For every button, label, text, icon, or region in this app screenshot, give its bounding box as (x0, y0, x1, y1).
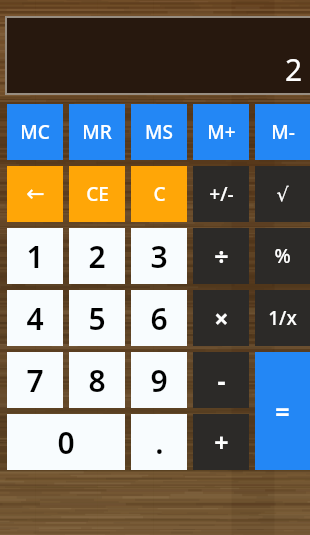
button[interactable]: +/- (193, 166, 249, 222)
staticText: 9 (150, 360, 168, 401)
staticText: 2 (285, 49, 303, 90)
staticText: MR (82, 119, 112, 145)
button[interactable]: 4 (7, 290, 63, 346)
staticText: 1 (26, 236, 44, 277)
button[interactable]: 6 (131, 290, 187, 346)
staticText: 6 (150, 298, 168, 339)
staticText: 4 (26, 298, 44, 339)
button[interactable]: % (255, 228, 310, 284)
staticText: 7 (26, 360, 44, 401)
button[interactable]: = (255, 352, 310, 470)
staticText: 0 (57, 422, 75, 463)
button[interactable]: 3 (131, 228, 187, 284)
staticText: 1/x (268, 305, 297, 331)
button[interactable]: 0 (7, 414, 125, 470)
button[interactable]: + (193, 414, 249, 470)
staticText: ← (26, 181, 45, 207)
button[interactable]: 1/x (255, 290, 310, 346)
button[interactable]: MC (7, 104, 63, 160)
staticText: MC (20, 119, 50, 145)
button[interactable]: MR (69, 104, 125, 160)
staticText: . (155, 422, 164, 463)
staticText: +/- (209, 181, 234, 207)
staticText: M+ (207, 119, 236, 145)
staticText: MS (145, 119, 173, 145)
staticText: = (275, 394, 290, 428)
button[interactable]: ÷ (193, 228, 249, 284)
staticText: 5 (88, 298, 106, 339)
staticText: √ (276, 183, 289, 205)
button[interactable]: 2 (69, 228, 125, 284)
staticText: C (153, 181, 166, 207)
staticText: 8 (88, 360, 106, 401)
staticText: CE (86, 181, 109, 207)
button[interactable]: MS (131, 104, 187, 160)
button[interactable]: 5 (69, 290, 125, 346)
button[interactable]: 1 (7, 228, 63, 284)
staticText: % (274, 243, 291, 269)
staticText: ÷ (214, 239, 229, 273)
staticText: + (214, 425, 229, 459)
button[interactable]: - (193, 352, 249, 408)
staticText: - (217, 363, 226, 397)
staticText: × (214, 301, 229, 335)
button[interactable]: × (193, 290, 249, 346)
button[interactable]: Backspace (7, 166, 63, 222)
button[interactable]: 8 (69, 352, 125, 408)
button[interactable]: 9 (131, 352, 187, 408)
button[interactable]: CE (69, 166, 125, 222)
staticText: 2 (88, 236, 106, 277)
staticText: 3 (150, 236, 168, 277)
button[interactable]: C (131, 166, 187, 222)
button[interactable]: √ (255, 166, 310, 222)
button[interactable]: M- (255, 104, 310, 160)
button[interactable]: 7 (7, 352, 63, 408)
button[interactable]: . (131, 414, 187, 470)
staticText: M- (271, 119, 295, 145)
button[interactable]: M+ (193, 104, 249, 160)
